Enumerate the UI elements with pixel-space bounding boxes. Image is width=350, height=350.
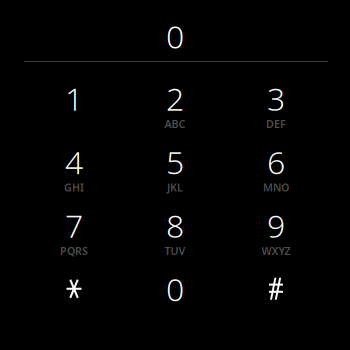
button[interactable]: 3	[225, 73, 326, 136]
staticText: 0	[166, 15, 184, 57]
button[interactable]: Star	[23, 263, 124, 327]
staticText: 7	[65, 204, 83, 246]
staticText: ABC	[164, 117, 185, 131]
staticText: 4	[65, 140, 83, 183]
staticText: WXYZ	[261, 244, 290, 258]
staticText: 5	[166, 140, 184, 183]
staticText: 0	[166, 267, 184, 310]
staticText: DEF	[266, 117, 286, 131]
button[interactable]: 7	[23, 200, 124, 263]
staticText: 2	[166, 77, 184, 119]
button[interactable]: 9	[225, 200, 326, 263]
staticText: 6	[267, 140, 285, 183]
button[interactable]: 4	[23, 136, 124, 200]
staticText: TUV	[164, 244, 185, 258]
button[interactable]: 0	[124, 263, 225, 327]
button[interactable]: Pound	[225, 263, 326, 327]
staticText: PQRS	[60, 244, 88, 258]
staticText: GHI	[64, 180, 84, 194]
button[interactable]: 2	[124, 73, 225, 136]
staticText: 9	[267, 204, 285, 246]
button[interactable]: 5	[124, 136, 225, 200]
staticText: 1	[65, 77, 83, 119]
button[interactable]: 6	[225, 136, 326, 200]
staticText: MNO	[263, 180, 289, 194]
staticText: JKL	[167, 180, 183, 194]
button[interactable]: 1	[23, 73, 124, 136]
button[interactable]: 8	[124, 200, 225, 263]
staticText: 3	[267, 77, 285, 119]
staticText: 8	[166, 204, 184, 246]
